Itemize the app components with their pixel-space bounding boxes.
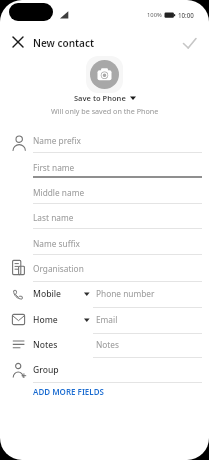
button[interactable]: Save to Phone: [0, 93, 209, 103]
button[interactable]: [86, 56, 123, 93]
button[interactable]: [30, 261, 202, 285]
button[interactable]: [30, 286, 90, 310]
staticText: Mobile: [33, 288, 62, 300]
button[interactable]: [30, 312, 90, 336]
staticText: 10:00: [178, 11, 194, 19]
button[interactable]: [30, 337, 90, 361]
button[interactable]: [30, 236, 202, 260]
button[interactable]: [30, 160, 202, 184]
staticText: Last name: [33, 212, 74, 223]
staticText: New contact: [33, 36, 95, 50]
button[interactable]: [30, 210, 202, 234]
staticText: Save to Phone: [74, 93, 126, 103]
staticText: 100%: [147, 11, 162, 19]
staticText: ADD MORE FIELDS: [33, 386, 104, 397]
staticText: Middle name: [33, 187, 85, 198]
staticText: Notes: [33, 339, 58, 351]
button[interactable]: [30, 133, 202, 157]
button[interactable]: [30, 185, 202, 209]
staticText: Will only be saved on the Phone: [51, 106, 159, 116]
staticText: Home: [33, 314, 58, 326]
button[interactable]: [30, 362, 202, 386]
staticText: Group: [33, 364, 59, 376]
staticText: First name: [33, 162, 75, 173]
staticText: Phone number: [96, 288, 155, 299]
staticText: Name prefix: [33, 135, 81, 146]
staticText: Organisation: [33, 263, 84, 274]
button[interactable]: ADD MORE FIELDS: [30, 385, 101, 401]
button[interactable]: [8, 32, 28, 52]
button[interactable]: [180, 34, 200, 54]
button[interactable]: [92, 312, 202, 336]
button[interactable]: [92, 286, 202, 310]
staticText: Email: [96, 314, 118, 325]
staticText: Name suffix: [33, 238, 80, 249]
button[interactable]: [92, 337, 202, 361]
staticText: Notes: [96, 339, 119, 350]
